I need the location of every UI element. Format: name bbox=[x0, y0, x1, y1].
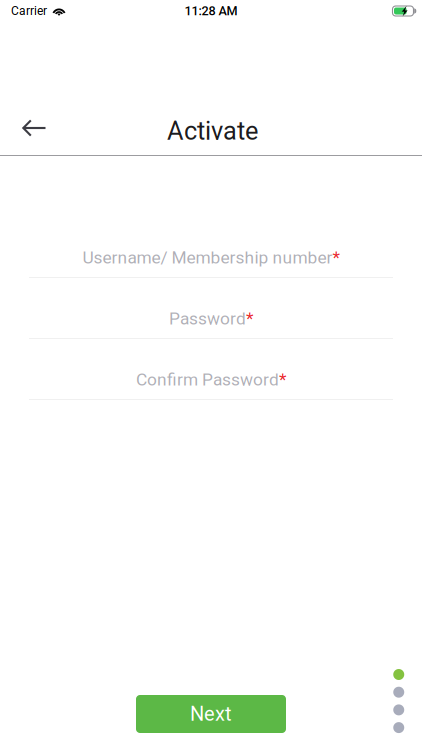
staticText: Next bbox=[190, 702, 232, 726]
button[interactable]: Next bbox=[136, 695, 286, 733]
staticText: Carrier bbox=[11, 4, 47, 18]
staticText: Password bbox=[169, 308, 246, 329]
button[interactable]: Confirm Password bbox=[29, 366, 393, 400]
staticText: * bbox=[332, 247, 339, 268]
button[interactable]: Back bbox=[0, 109, 68, 153]
staticText: 11:28 AM bbox=[184, 4, 237, 18]
staticText: Confirm Password bbox=[136, 369, 279, 390]
staticText: * bbox=[279, 369, 286, 390]
button[interactable]: Password bbox=[29, 305, 393, 339]
staticText: Activate bbox=[167, 116, 258, 146]
staticText: * bbox=[246, 308, 253, 329]
button[interactable]: Username/ Membership number bbox=[29, 244, 393, 278]
staticText: Username/ Membership number bbox=[82, 247, 332, 268]
